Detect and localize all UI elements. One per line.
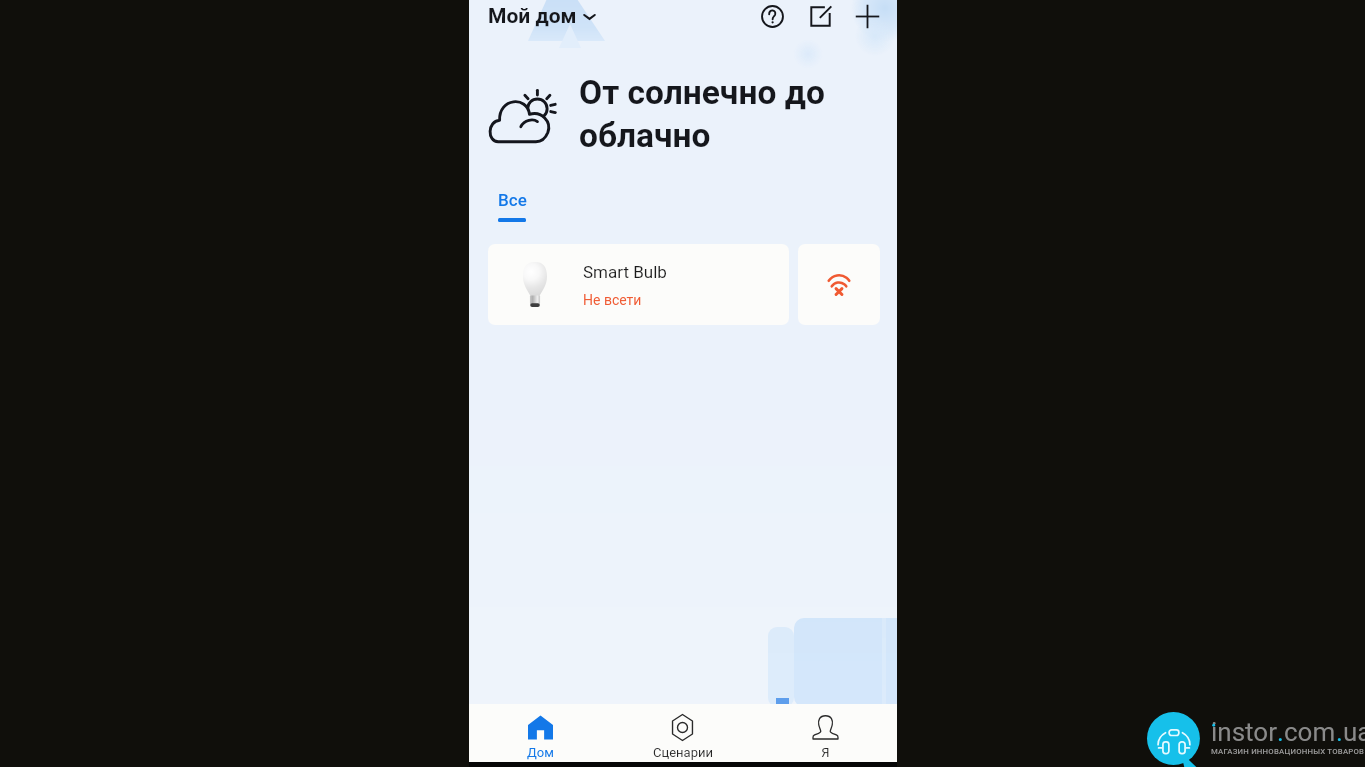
button[interactable]: Offline — [798, 244, 880, 325]
button[interactable]: Мой дом — [488, 4, 597, 29]
staticText: Я — [821, 745, 830, 760]
button[interactable]: Help — [754, 0, 790, 34]
button[interactable]: Smart Bulb — [488, 244, 789, 325]
staticText: com — [1284, 717, 1336, 747]
button[interactable]: Add — [849, 0, 885, 34]
staticText: ua — [1343, 717, 1365, 747]
staticText: Мой дом — [488, 4, 577, 29]
staticText: instor — [1211, 717, 1277, 747]
staticText: Сценарии — [653, 745, 713, 760]
staticText: . — [1336, 717, 1343, 747]
staticText: Smart Bulb — [583, 262, 667, 282]
button[interactable]: Edit — [802, 0, 838, 34]
staticText: МАГАЗИН ИННОВАЦИОННЫХ ТОВАРОВ — [1211, 747, 1365, 756]
button[interactable]: Все — [498, 190, 527, 222]
staticText: Не всети — [583, 292, 642, 308]
staticText: Все — [498, 190, 527, 210]
button[interactable]: Я — [754, 704, 897, 762]
staticText: От солнечно до облачно — [579, 73, 849, 155]
button[interactable]: Дом — [469, 704, 611, 762]
staticText: Дом — [527, 745, 554, 760]
staticText: . — [1277, 717, 1284, 747]
button[interactable]: Сценарии — [611, 704, 754, 762]
